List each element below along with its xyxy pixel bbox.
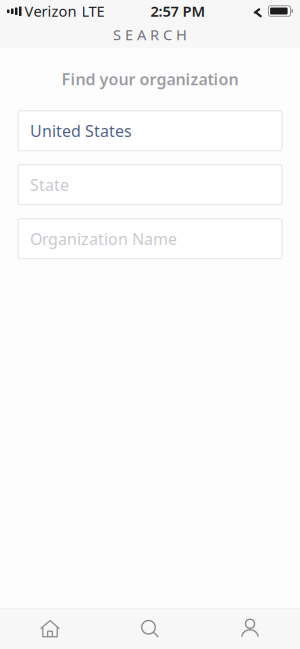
staticText: Verizon: [24, 1, 76, 21]
button[interactable]: Search: [100, 608, 200, 649]
button[interactable]: Country: [18, 111, 282, 151]
staticText: Organization Name: [30, 228, 177, 249]
button[interactable]: Home: [0, 608, 100, 649]
staticText: State: [30, 174, 69, 195]
staticText: S E A R C H: [113, 25, 187, 44]
button[interactable]: Organization Name: [18, 219, 282, 259]
staticText: Find your organization: [61, 68, 238, 90]
button[interactable]: State: [18, 165, 282, 205]
staticText: United States: [30, 120, 132, 141]
button[interactable]: Profile: [200, 608, 300, 649]
staticText: LTE: [81, 1, 104, 21]
staticText: 2:57 PM: [150, 1, 205, 21]
